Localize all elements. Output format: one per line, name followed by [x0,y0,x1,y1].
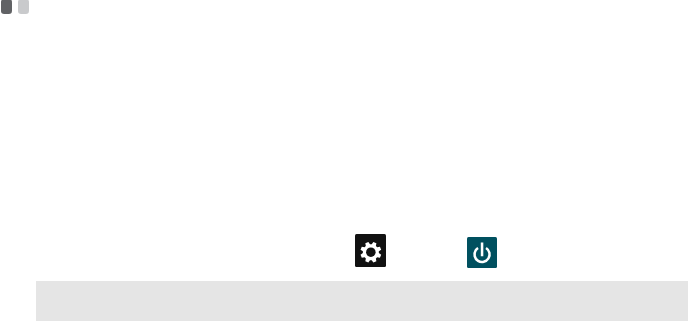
button[interactable]: Power [467,237,497,268]
button[interactable]: Settings [355,234,386,267]
button[interactable]: Page 2 [18,0,29,14]
button[interactable]: Page 1 [1,0,12,14]
